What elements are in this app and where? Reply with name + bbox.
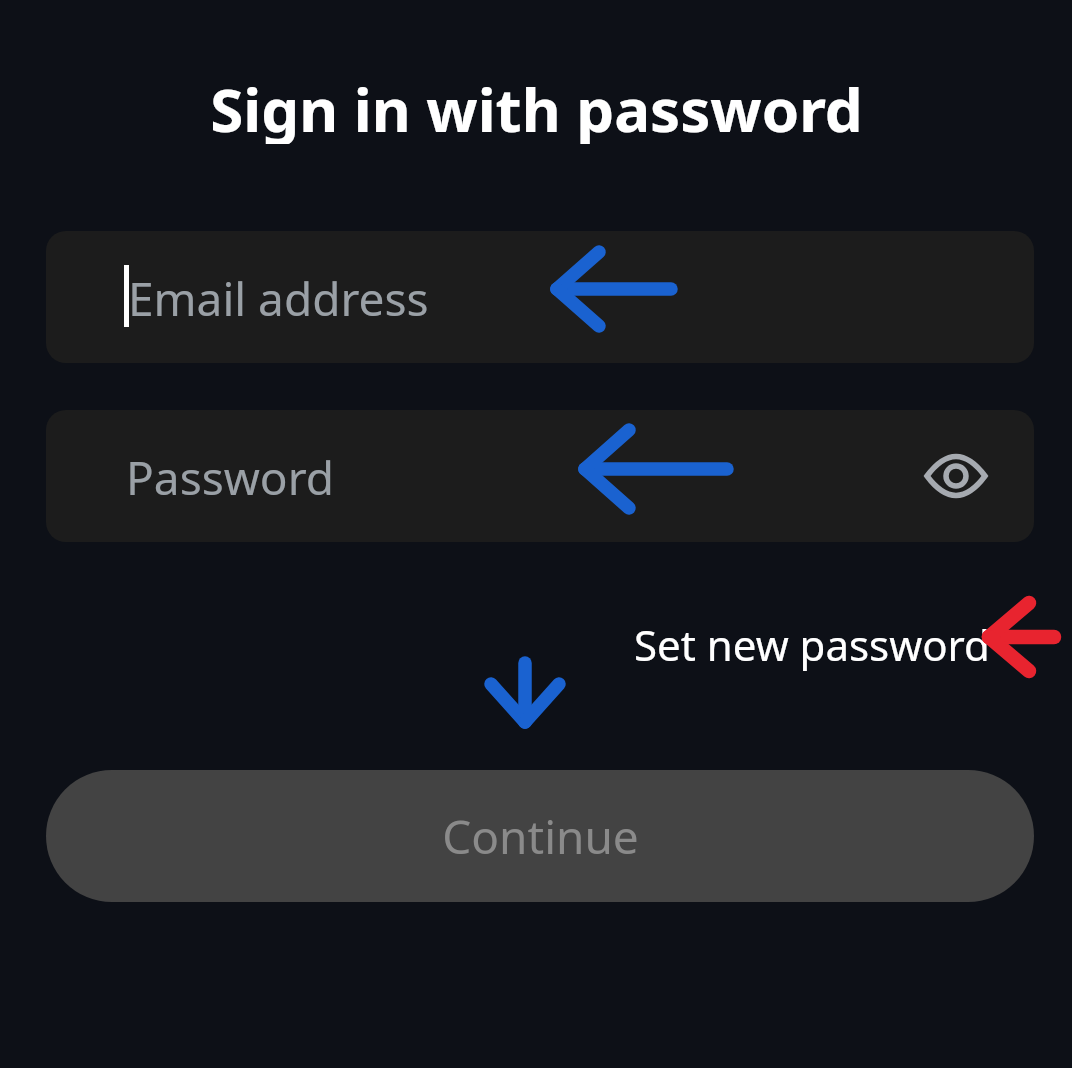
staticText: Password [126, 446, 335, 509]
button[interactable]: Set new password [600, 612, 990, 676]
button[interactable]: Continue [46, 770, 1034, 902]
staticText: Set new password [634, 616, 990, 673]
staticText: Sign in with password [210, 68, 863, 144]
button[interactable]: Password [46, 410, 1034, 542]
staticText: Continue [442, 805, 639, 868]
button[interactable]: Email address [46, 231, 1034, 363]
staticText: Email address [128, 267, 429, 330]
button[interactable]: Show password [896, 416, 1016, 536]
